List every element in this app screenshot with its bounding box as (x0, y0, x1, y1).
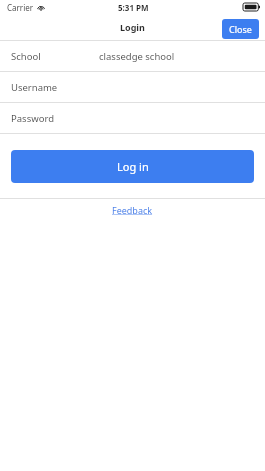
button[interactable]: School (0, 41, 265, 71)
button[interactable]: Password (0, 103, 265, 133)
staticText: School (11, 50, 41, 63)
staticText: classedge school (99, 50, 175, 63)
staticText: Password (11, 112, 54, 125)
staticText: Username (11, 81, 58, 94)
staticText: Log in (117, 159, 149, 174)
staticText: Feedback (112, 204, 153, 216)
button[interactable]: Close (222, 19, 259, 39)
staticText: Carrier (7, 2, 34, 13)
staticText: Login (120, 21, 145, 33)
button[interactable]: Username (0, 72, 265, 102)
button[interactable]: Feedback (102, 199, 163, 221)
button[interactable]: Log in (11, 150, 254, 183)
staticText: Close (229, 23, 252, 35)
staticText: 5:31 PM (118, 2, 149, 13)
